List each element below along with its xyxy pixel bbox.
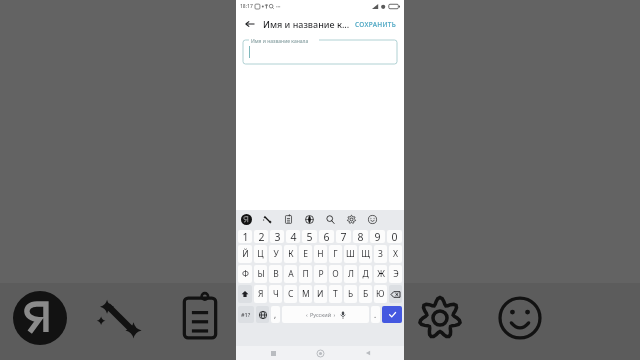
staticText: И (317, 288, 324, 300)
staticText: 18:17 (240, 3, 253, 10)
button[interactable]: Ю (374, 285, 387, 303)
button[interactable]: К (284, 245, 297, 263)
staticText: З (378, 248, 383, 260)
button[interactable]: 5 (302, 230, 317, 243)
staticText: Я (258, 288, 264, 300)
button[interactable]: 4 (286, 230, 300, 243)
button[interactable]: Ь (344, 285, 357, 303)
button[interactable]: Назад (357, 346, 379, 360)
button[interactable]: Готово (382, 306, 402, 323)
button[interactable]: 6 (319, 230, 334, 243)
staticText: ‹ (306, 311, 310, 318)
button[interactable]: У (269, 245, 282, 263)
button[interactable]: О (329, 265, 342, 283)
button[interactable]: В (269, 265, 282, 283)
staticText: 4 (290, 230, 297, 243)
button[interactable]: С (284, 285, 297, 303)
staticText: 7 (340, 230, 347, 243)
button[interactable]: ‹ (282, 306, 369, 323)
button[interactable]: Shift (238, 285, 252, 303)
button[interactable]: Буфер обмена (278, 210, 299, 229)
button[interactable]: Эмодзи (362, 210, 383, 229)
button[interactable]: З (374, 245, 387, 263)
button[interactable]: М (299, 285, 312, 303)
button[interactable]: Ж (374, 265, 387, 283)
staticText: Н (317, 248, 324, 260)
staticText: Ю (376, 288, 385, 300)
staticText: 3 (274, 230, 281, 243)
staticText: 9 (374, 230, 381, 243)
staticText: , (274, 309, 277, 320)
button[interactable]: Д (359, 265, 372, 283)
staticText: › (332, 311, 336, 318)
staticText: Х (393, 248, 398, 260)
button[interactable]: Б (359, 285, 372, 303)
staticText: Ч (273, 288, 279, 300)
button[interactable]: 1 (238, 230, 252, 243)
button[interactable]: Имя и название канала (243, 40, 397, 64)
staticText: Щ (361, 248, 370, 260)
button[interactable]: Ф (238, 265, 252, 283)
staticText: 8 (357, 230, 364, 243)
staticText: 1 (242, 230, 249, 243)
button[interactable]: Сменить язык (256, 306, 269, 323)
button[interactable]: Назад (242, 16, 258, 32)
button[interactable]: И (314, 285, 327, 303)
button[interactable]: Удалить (389, 285, 402, 303)
button[interactable]: 9 (370, 230, 385, 243)
button[interactable]: Э (389, 265, 402, 283)
button[interactable]: Перевод (299, 210, 320, 229)
button[interactable]: Ц (254, 245, 267, 263)
button[interactable]: Настройки (341, 210, 362, 229)
button[interactable]: Г (329, 245, 342, 263)
button[interactable]: Й (238, 245, 252, 263)
staticText: О (332, 268, 339, 280)
button[interactable]: Щ (359, 245, 372, 263)
button[interactable]: Я (254, 285, 267, 303)
button[interactable]: Домой (309, 346, 331, 360)
button[interactable]: . (371, 306, 380, 323)
button[interactable]: 3 (270, 230, 284, 243)
staticText: . (374, 309, 377, 320)
staticText: 5 (306, 230, 313, 243)
button[interactable]: , (271, 306, 280, 323)
staticText: Б (363, 288, 369, 300)
button[interactable]: Ш (344, 245, 357, 263)
staticText: Имя и название канала (251, 38, 309, 45)
staticText: Ц (257, 248, 264, 260)
staticText: С (288, 288, 294, 300)
button[interactable]: 7 (336, 230, 351, 243)
staticText: П (302, 268, 309, 280)
staticText: Ж (377, 268, 385, 280)
button[interactable]: 8 (353, 230, 368, 243)
staticText: Э (393, 268, 399, 280)
staticText: Р (318, 268, 324, 280)
button[interactable]: Яндекс (236, 210, 257, 229)
button[interactable]: Обзор (262, 346, 284, 360)
button[interactable]: #1? (238, 306, 254, 323)
button[interactable]: СОХРАНИТЬ (353, 18, 398, 31)
button[interactable]: Н (314, 245, 327, 263)
button[interactable]: Редактор (257, 210, 278, 229)
staticText: Русский (310, 311, 332, 318)
staticText: 2 (258, 230, 265, 243)
staticText: Ш (346, 248, 355, 260)
staticText: 6 (323, 230, 330, 243)
button[interactable]: Ч (269, 285, 282, 303)
staticText: В (273, 268, 279, 280)
staticText: М (302, 288, 310, 300)
button[interactable]: Х (389, 245, 402, 263)
staticText: У (273, 248, 279, 260)
button[interactable]: А (284, 265, 297, 283)
button[interactable]: Поиск (320, 210, 341, 229)
staticText: Ы (257, 268, 265, 280)
button[interactable]: 2 (254, 230, 268, 243)
button[interactable]: Р (314, 265, 327, 283)
button[interactable]: Ы (254, 265, 267, 283)
button[interactable]: П (299, 265, 312, 283)
button[interactable]: Л (344, 265, 357, 283)
button[interactable]: 0 (387, 230, 402, 243)
button[interactable]: Т (329, 285, 342, 303)
button[interactable]: Е (299, 245, 312, 263)
